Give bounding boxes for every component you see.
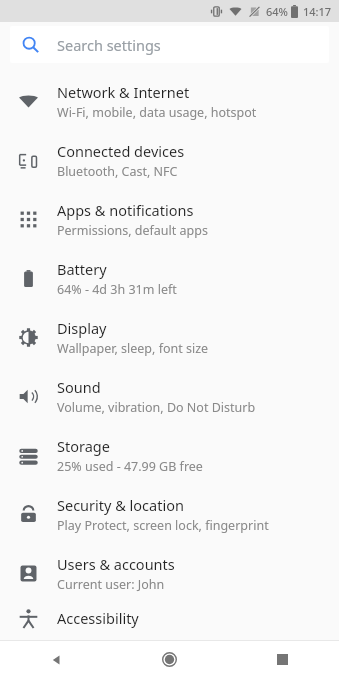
button[interactable]: Security & location	[0, 485, 339, 544]
button[interactable]: Search settings	[10, 26, 329, 63]
staticText: Accessibility	[57, 608, 139, 628]
button[interactable]: Sound	[0, 367, 339, 426]
staticText: Network & Internet	[57, 82, 190, 102]
staticText: Apps & notifications	[57, 200, 194, 220]
button[interactable]: Battery	[0, 249, 339, 308]
button[interactable]: Apps & notifications	[0, 190, 339, 249]
staticText: Security & location	[57, 495, 184, 515]
staticText: Search settings	[57, 35, 161, 55]
staticText: Storage	[57, 436, 110, 456]
button[interactable]: Back	[0, 641, 113, 678]
staticText: Battery	[57, 259, 107, 279]
staticText: 25% used - 47.99 GB free	[57, 458, 203, 475]
staticText: Play Protect, screen lock, fingerprint	[57, 517, 269, 534]
staticText: 14:17	[303, 4, 332, 19]
staticText: Volume, vibration, Do Not Disturb	[57, 399, 256, 416]
staticText: Display	[57, 318, 107, 338]
staticText: Current user: John	[57, 576, 165, 593]
staticText: 64%	[266, 4, 288, 19]
staticText: Users & accounts	[57, 554, 175, 574]
staticText: Sound	[57, 377, 101, 397]
button[interactable]: Connected devices	[0, 131, 339, 190]
button[interactable]: Storage	[0, 426, 339, 485]
staticText: Permissions, default apps	[57, 222, 208, 239]
staticText: Connected devices	[57, 141, 185, 161]
staticText: Bluetooth, Cast, NFC	[57, 163, 178, 180]
button[interactable]: Recent apps	[226, 641, 339, 678]
staticText: 64% - 4d 3h 31m left	[57, 281, 177, 298]
staticText: Wallpaper, sleep, font size	[57, 340, 209, 357]
button[interactable]: Display	[0, 308, 339, 367]
button[interactable]: Network & Internet	[0, 72, 339, 131]
button[interactable]: Users & accounts	[0, 544, 339, 603]
staticText: Wi-Fi, mobile, data usage, hotspot	[57, 104, 257, 121]
button[interactable]: Home	[113, 641, 226, 678]
button[interactable]: Accessibility	[0, 603, 339, 633]
